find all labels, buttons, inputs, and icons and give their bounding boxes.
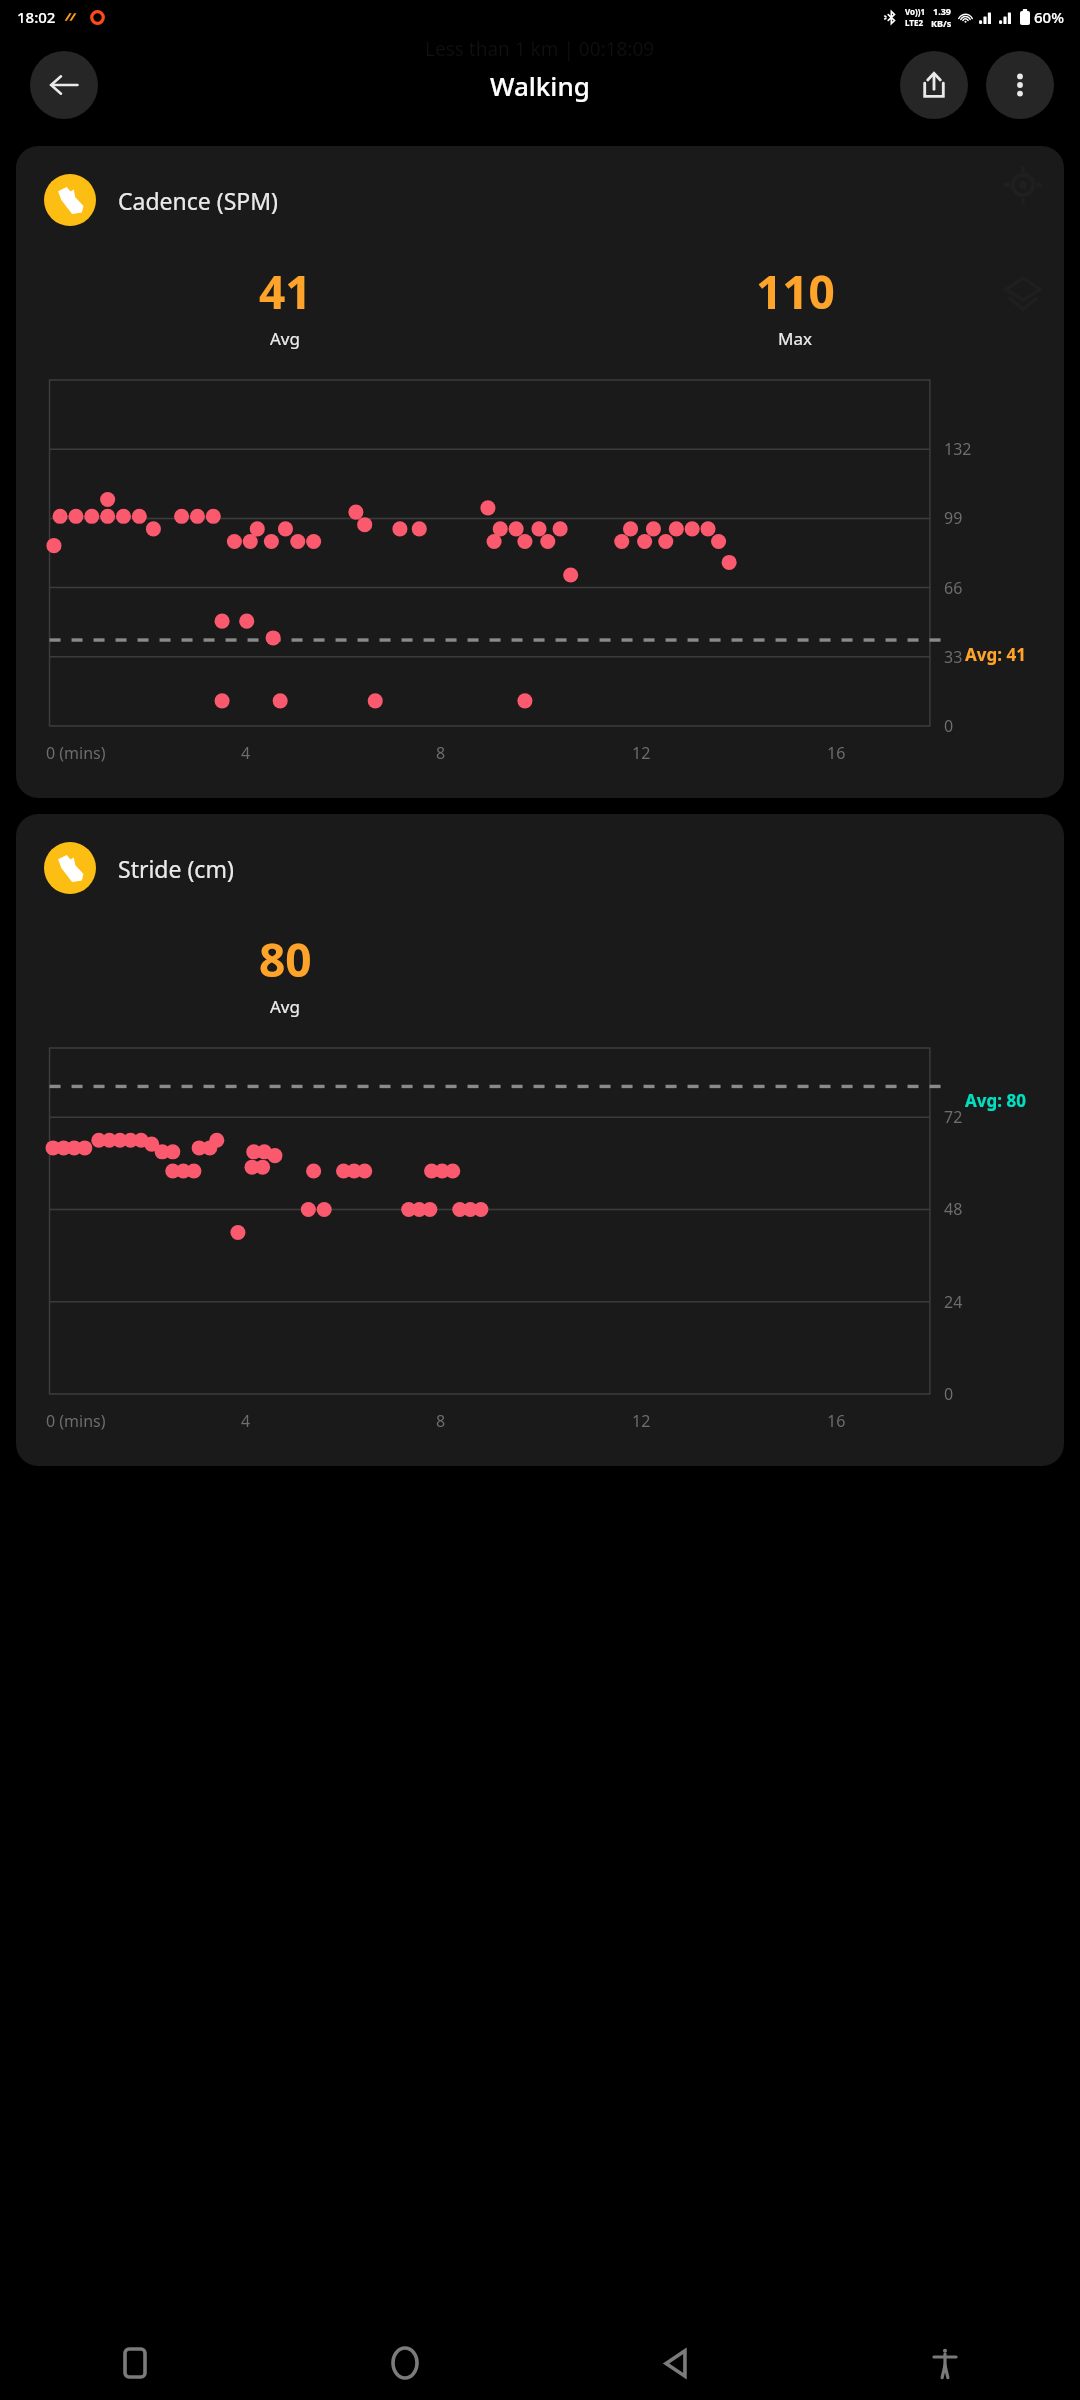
staticText: 4 [241,742,251,764]
staticText: 72 [944,1106,963,1128]
staticText: LTE2 [905,17,923,28]
staticText: 0 (mins) [46,1410,106,1432]
staticText: 99 [944,507,963,529]
staticText: Avg [270,327,300,350]
staticText: 66 [944,577,963,599]
staticText: Avg: 80 [965,1089,1026,1112]
staticText: 4 [241,1410,251,1432]
staticText: Stride (cm) [118,853,234,884]
staticText: 12 [632,742,651,764]
staticText: Cadence (SPM) [118,185,278,216]
staticText: 18:02 [17,7,56,27]
staticText: 1.39 [933,5,951,17]
button[interactable]: More options [986,51,1054,119]
button[interactable]: Cadence (SPM) [16,146,1064,798]
staticText: 24 [944,1291,963,1313]
button[interactable]: Home [270,2326,540,2400]
staticText: KB/s [931,17,952,29]
staticText: 0 [944,1383,954,1405]
staticText: 33 [944,646,963,668]
staticText: 8 [436,742,446,764]
staticText: Avg: 41 [965,643,1026,666]
button[interactable]: Share [900,51,968,119]
staticText: 12 [632,1410,651,1432]
staticText: 110 [756,260,835,323]
staticText: 0 [944,715,954,737]
staticText: 16 [827,742,846,764]
button[interactable]: Back [30,51,98,119]
staticText: Max [778,327,812,350]
staticText: Walking [490,68,590,103]
staticText: 80 [259,928,312,991]
staticText: Avg [270,995,300,1018]
staticText: 16 [827,1410,846,1432]
staticText: 41 [259,260,312,323]
staticText: 60% [1034,7,1064,27]
button[interactable]: Back [540,2326,810,2400]
button[interactable]: Accessibility [810,2326,1080,2400]
staticText: Vo))1 [905,6,926,17]
button[interactable]: Stride (cm) [16,814,1064,1466]
staticText: 8 [436,1410,446,1432]
staticText: 0 (mins) [46,742,106,764]
staticText: Less than 1 km | 00:18:09 [425,36,655,62]
staticText: 132 [944,438,972,460]
staticText: 48 [944,1198,963,1220]
button[interactable]: Recent apps [0,2326,270,2400]
